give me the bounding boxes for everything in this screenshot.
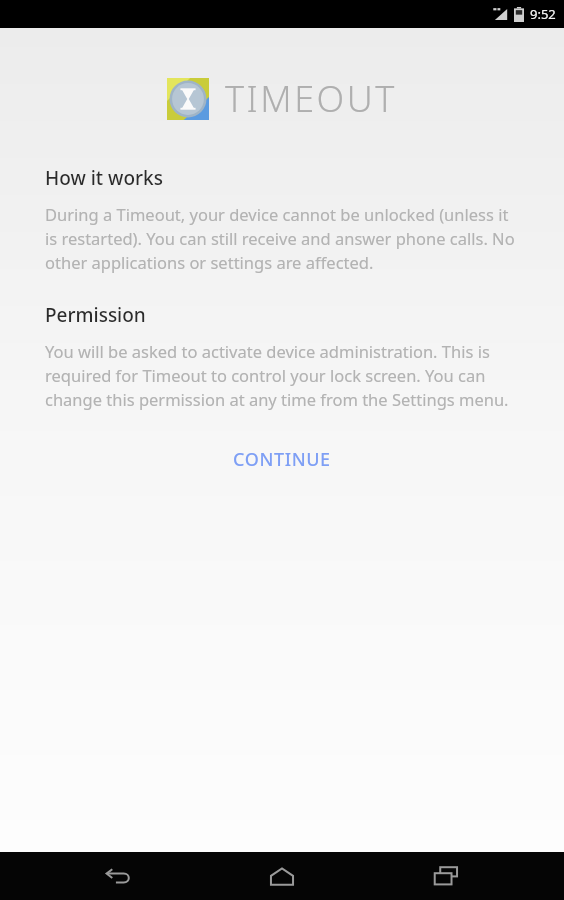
button[interactable]: Recent apps	[418, 852, 474, 900]
staticText: TIMEOUT	[225, 74, 397, 123]
staticText: You will be asked to activate device adm…	[45, 340, 519, 411]
button[interactable]: Home	[254, 852, 310, 900]
staticText: CONTINUE	[233, 447, 331, 472]
staticText: 9:52	[530, 5, 556, 23]
staticText: During a Timeout, your device cannot be …	[45, 203, 519, 274]
button[interactable]: Back	[90, 852, 146, 900]
staticText: Permission	[45, 302, 146, 328]
staticText: How it works	[45, 165, 163, 191]
button[interactable]: CONTINUE	[215, 437, 349, 482]
